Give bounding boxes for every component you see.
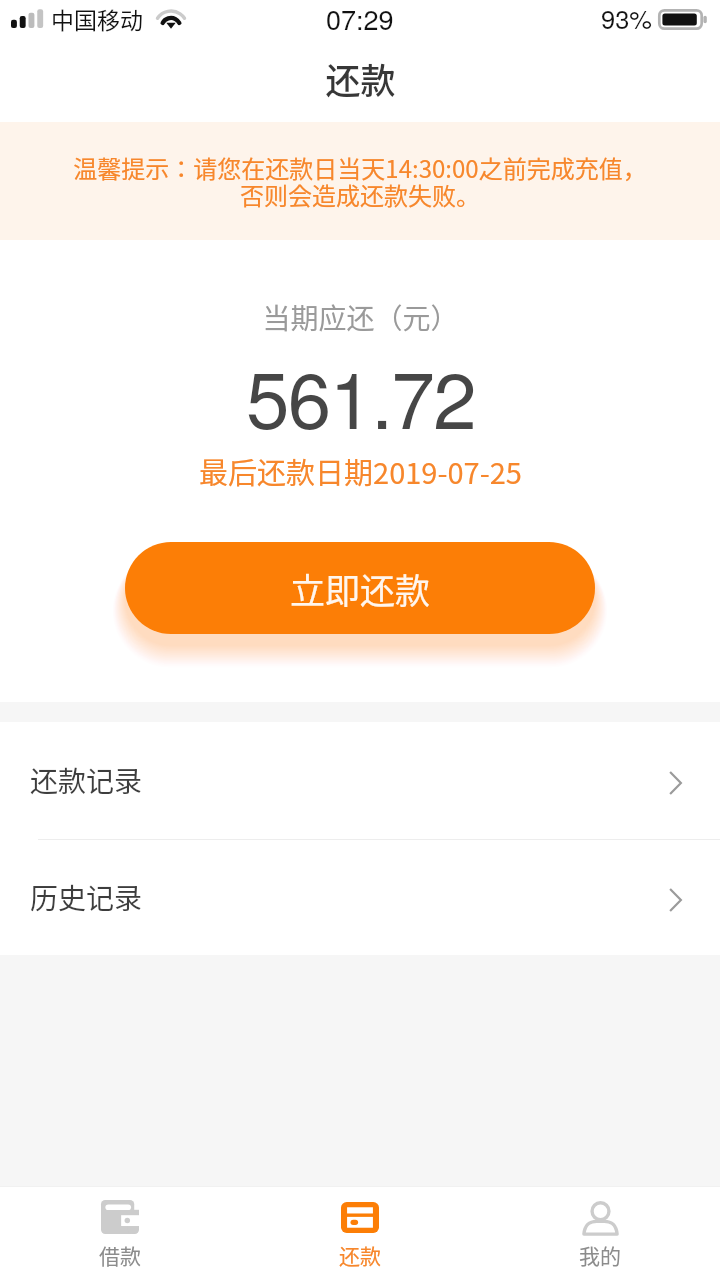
staticText: 07:29 <box>326 0 394 38</box>
button[interactable]: 立即还款 <box>125 542 595 634</box>
staticText: 当期应还（元） <box>262 297 459 338</box>
staticText: 借款 <box>99 1240 141 1270</box>
button[interactable]: 我的 <box>480 1187 720 1280</box>
staticText: 还款 <box>325 53 396 104</box>
staticText: 还款记录 <box>30 760 143 801</box>
staticText: 历史记录 <box>30 877 143 918</box>
staticText: 否则会造成还款失败。 <box>240 177 480 212</box>
other: 我的 <box>582 1198 619 1236</box>
staticText: 立即还款 <box>290 563 431 614</box>
staticText: 93% <box>601 0 653 37</box>
other: 还款 <box>341 1202 379 1233</box>
button[interactable]: 还款记录 <box>0 722 720 839</box>
staticText: 我的 <box>579 1240 621 1270</box>
staticText: 还款 <box>339 1240 381 1270</box>
button[interactable]: 借款 <box>0 1187 240 1280</box>
staticText: 最后还款日期2019-07-25 <box>199 450 522 492</box>
button[interactable]: 历史记录 <box>0 840 720 955</box>
other: 借款 <box>101 1200 139 1234</box>
button[interactable]: 还款 <box>240 1187 480 1280</box>
staticText: 中国移动 <box>51 2 143 35</box>
staticText: 温馨提示：请您在还款日当天14:30:00之前完成充值， <box>73 150 647 185</box>
staticText: 561.72 <box>246 339 475 451</box>
